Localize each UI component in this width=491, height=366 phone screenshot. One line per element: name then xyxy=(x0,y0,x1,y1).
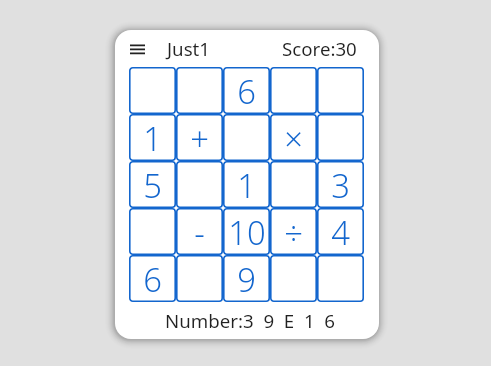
staticText: 1 xyxy=(237,163,256,208)
button[interactable]: 1 xyxy=(223,161,270,208)
staticText: + xyxy=(190,116,209,161)
staticText: 3 xyxy=(331,163,350,208)
button[interactable] xyxy=(176,255,223,302)
staticText: - xyxy=(194,210,205,255)
button[interactable] xyxy=(317,67,364,114)
button[interactable] xyxy=(270,161,317,208)
button[interactable] xyxy=(223,114,270,161)
staticText: 5 xyxy=(143,163,162,208)
button[interactable]: 1 xyxy=(129,114,176,161)
button[interactable] xyxy=(317,114,364,161)
staticText: 10 xyxy=(228,210,266,255)
button[interactable]: Menu xyxy=(122,34,152,64)
staticText: Number:3 9 E 1 6 xyxy=(165,308,336,333)
button[interactable] xyxy=(270,67,317,114)
button[interactable] xyxy=(270,255,317,302)
staticText: 6 xyxy=(237,69,256,114)
staticText: 9 xyxy=(237,257,256,302)
staticText: Just1 xyxy=(167,36,211,61)
button[interactable]: 5 xyxy=(129,161,176,208)
staticText: 4 xyxy=(331,210,350,255)
staticText: 1 xyxy=(143,116,162,161)
button[interactable]: 6 xyxy=(129,255,176,302)
button[interactable] xyxy=(129,67,176,114)
button[interactable]: 9 xyxy=(223,255,270,302)
button[interactable] xyxy=(176,67,223,114)
button[interactable] xyxy=(129,208,176,255)
button[interactable]: ÷ xyxy=(270,208,317,255)
button[interactable]: 4 xyxy=(317,208,364,255)
button[interactable]: 6 xyxy=(223,67,270,114)
button[interactable]: 3 xyxy=(317,161,364,208)
button[interactable] xyxy=(176,161,223,208)
staticText: 6 xyxy=(143,257,162,302)
staticText: Score:30 xyxy=(282,36,357,61)
button[interactable]: - xyxy=(176,208,223,255)
staticText: × xyxy=(284,116,303,161)
button[interactable]: × xyxy=(270,114,317,161)
staticText: ÷ xyxy=(284,210,303,255)
button[interactable] xyxy=(317,255,364,302)
button[interactable]: 10 xyxy=(223,208,270,255)
button[interactable]: + xyxy=(176,114,223,161)
